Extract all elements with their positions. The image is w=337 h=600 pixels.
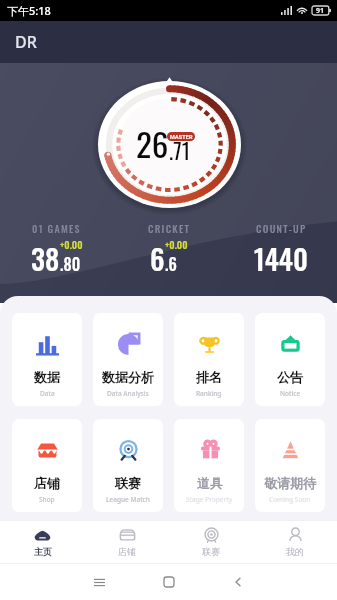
- button[interactable]: 店铺: [85, 521, 169, 563]
- button[interactable]: 道具: [174, 419, 244, 512]
- staticText: CRICKET: [148, 221, 191, 236]
- staticText: MASTER: [170, 134, 193, 140]
- button[interactable]: 公告: [255, 313, 325, 406]
- staticText: 26: [136, 119, 169, 168]
- staticText: 排名: [196, 369, 222, 385]
- button[interactable]: 敬请期待: [255, 419, 325, 512]
- staticText: Coming Soon: [269, 495, 311, 504]
- staticText: +0.00: [60, 237, 83, 252]
- staticText: 敬请期待: [264, 475, 316, 491]
- button[interactable]: 数据分析: [93, 313, 163, 406]
- staticText: Data Analysis: [107, 389, 149, 398]
- staticText: Notice: [280, 389, 301, 398]
- staticText: 下午5:18: [7, 3, 51, 18]
- staticText: 联赛: [202, 546, 220, 557]
- staticText: 数据: [34, 369, 60, 385]
- button[interactable]: 联赛: [93, 419, 163, 512]
- staticText: Shop: [39, 495, 55, 504]
- staticText: 我的: [286, 546, 304, 557]
- button[interactable]: Recents: [88, 571, 110, 593]
- button[interactable]: 主页: [0, 521, 85, 563]
- button[interactable]: 联赛: [169, 521, 253, 563]
- staticText: Data: [40, 389, 55, 398]
- staticText: 38: [31, 238, 60, 279]
- staticText: 91: [316, 6, 325, 15]
- button[interactable]: 排名: [174, 313, 244, 406]
- staticText: .6: [165, 252, 177, 276]
- staticText: Stage Property: [186, 495, 233, 504]
- button[interactable]: Home: [158, 571, 180, 593]
- staticText: 01 GAMES: [32, 221, 81, 236]
- staticText: 1440: [254, 238, 308, 279]
- staticText: 6: [150, 238, 165, 279]
- button[interactable]: 店铺: [12, 419, 82, 512]
- staticText: 道具: [197, 475, 223, 491]
- button[interactable]: 数据: [12, 313, 82, 406]
- staticText: 主页: [34, 546, 52, 557]
- staticText: DR: [15, 31, 37, 53]
- staticText: COUNT-UP: [256, 221, 307, 236]
- button[interactable]: Back: [227, 571, 249, 593]
- staticText: 公告: [277, 369, 303, 385]
- staticText: 店铺: [118, 546, 136, 557]
- button[interactable]: 我的: [253, 521, 337, 563]
- staticText: +0.00: [165, 237, 188, 252]
- staticText: 数据分析: [102, 369, 154, 385]
- staticText: League Match: [106, 495, 150, 504]
- staticText: 店铺: [34, 475, 60, 491]
- staticText: Ranking: [196, 389, 222, 398]
- staticText: .71: [169, 134, 190, 167]
- staticText: .80: [60, 252, 81, 276]
- staticText: 联赛: [115, 475, 141, 491]
